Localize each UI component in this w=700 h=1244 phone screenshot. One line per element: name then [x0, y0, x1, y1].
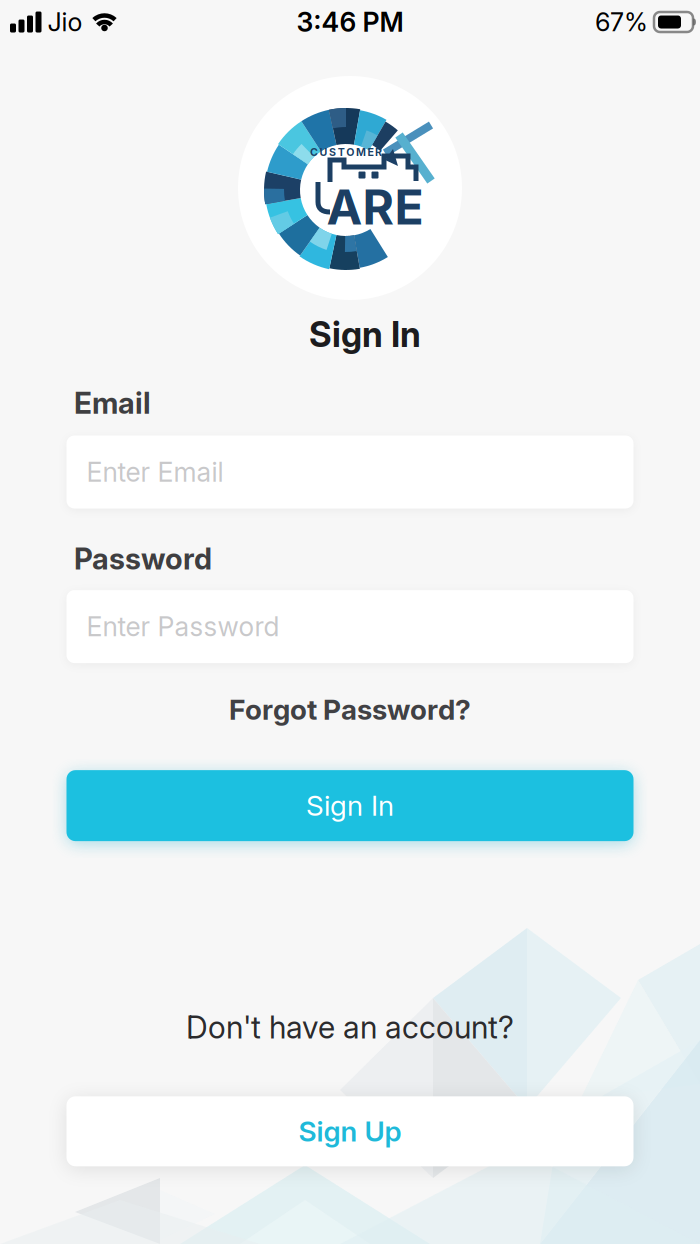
staticText: O — [346, 146, 354, 158]
staticText: C — [310, 146, 318, 158]
staticText: ARE — [326, 179, 423, 235]
button[interactable]: Sign In — [66, 770, 633, 841]
staticText: S — [329, 146, 336, 158]
staticText: Jio — [47, 7, 82, 37]
staticText: Enter Password — [86, 611, 279, 642]
staticText: R — [375, 146, 382, 158]
staticText: Password — [74, 541, 212, 576]
button[interactable]: Enter Password — [66, 590, 633, 663]
staticText: Forgot Password? — [229, 693, 471, 726]
staticText: M — [356, 146, 366, 158]
staticText: E — [367, 146, 373, 158]
button[interactable]: Enter Email — [66, 435, 633, 508]
staticText: Sign In — [309, 314, 421, 355]
staticText: 67% — [595, 7, 648, 37]
button[interactable]: Forgot Password? — [229, 693, 471, 726]
staticText: U — [319, 146, 327, 158]
button[interactable]: Sign Up — [66, 1096, 633, 1166]
staticText: Sign In — [306, 789, 394, 822]
staticText: 3:46 PM — [296, 6, 403, 38]
staticText: Enter Email — [86, 456, 223, 488]
staticText: Sign Up — [298, 1115, 401, 1148]
staticText: Don't have an account? — [186, 1009, 514, 1045]
staticText: T — [338, 146, 345, 158]
staticText: Email — [74, 386, 151, 420]
